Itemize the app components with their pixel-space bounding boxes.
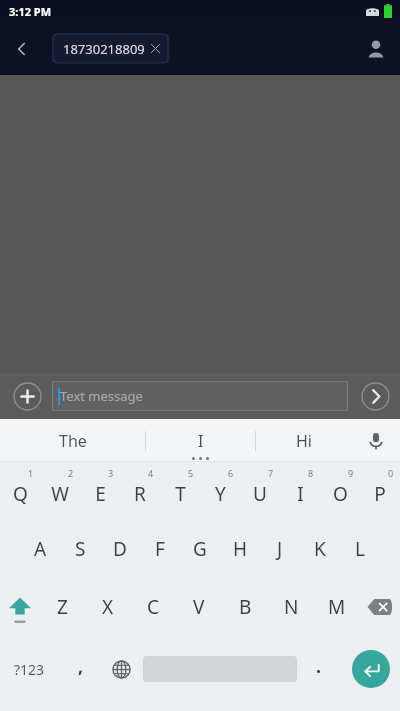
staticText: T bbox=[175, 481, 186, 507]
staticText: I bbox=[198, 430, 204, 452]
staticText: Text message bbox=[60, 387, 143, 405]
button[interactable]: T bbox=[160, 462, 200, 520]
button[interactable]: Y bbox=[200, 462, 240, 520]
button[interactable]: E bbox=[80, 462, 120, 520]
button[interactable]: Attach bbox=[9, 378, 45, 414]
staticText: P bbox=[374, 481, 386, 507]
staticText: O bbox=[333, 481, 348, 507]
button[interactable]: Backspace bbox=[360, 578, 400, 636]
staticText: N bbox=[284, 594, 299, 620]
staticText: J bbox=[277, 536, 283, 562]
staticText: R bbox=[134, 481, 146, 507]
button[interactable]: Shift bbox=[0, 578, 40, 636]
staticText: E bbox=[95, 481, 106, 507]
button[interactable]: The bbox=[0, 419, 145, 462]
button[interactable]: H bbox=[220, 520, 260, 578]
button[interactable]: D bbox=[100, 520, 140, 578]
staticText: L bbox=[355, 536, 365, 562]
button[interactable]: Text message bbox=[52, 381, 348, 411]
button[interactable]: G bbox=[180, 520, 220, 578]
button[interactable]: C bbox=[130, 578, 176, 636]
button[interactable]: Back bbox=[0, 27, 44, 71]
button[interactable]: K bbox=[300, 520, 340, 578]
staticText: The bbox=[59, 430, 87, 452]
staticText: 0 bbox=[388, 467, 394, 479]
staticText: , bbox=[78, 654, 84, 679]
staticText: B bbox=[239, 594, 252, 620]
button[interactable]: N bbox=[268, 578, 314, 636]
staticText: M bbox=[328, 594, 346, 620]
staticText: 3:12 PM bbox=[9, 4, 52, 19]
staticText: 1 bbox=[28, 467, 34, 479]
button[interactable]: Enter bbox=[352, 650, 390, 688]
button[interactable]: W bbox=[40, 462, 80, 520]
button[interactable]: 18730218809 bbox=[53, 34, 170, 63]
button[interactable]: Contact details bbox=[352, 25, 400, 73]
staticText: Hi bbox=[296, 430, 312, 452]
staticText: Z bbox=[57, 594, 68, 620]
button[interactable]: Z bbox=[40, 578, 85, 636]
button[interactable]: Voice input bbox=[352, 419, 400, 462]
staticText: G bbox=[193, 536, 207, 562]
button[interactable]: I bbox=[280, 462, 320, 520]
staticText: 4 bbox=[148, 467, 154, 479]
button[interactable]: B bbox=[222, 578, 268, 636]
staticText: K bbox=[314, 536, 326, 562]
staticText: S bbox=[75, 536, 86, 562]
staticText: U bbox=[253, 481, 267, 507]
staticText: 6 bbox=[228, 467, 234, 479]
button[interactable]: Hi bbox=[256, 419, 352, 462]
button[interactable]: , bbox=[62, 639, 100, 699]
staticText: W bbox=[51, 481, 69, 507]
button[interactable]: U bbox=[240, 462, 280, 520]
staticText: 9 bbox=[348, 467, 354, 479]
staticText: 3 bbox=[108, 467, 114, 479]
button[interactable]: P bbox=[360, 462, 400, 520]
staticText: C bbox=[147, 594, 160, 620]
button[interactable]: J bbox=[260, 520, 300, 578]
staticText: ?123 bbox=[14, 660, 45, 679]
staticText: V bbox=[193, 594, 205, 620]
button[interactable]: Change language bbox=[103, 639, 139, 699]
staticText: 2 bbox=[68, 467, 74, 479]
staticText: I bbox=[297, 481, 304, 507]
staticText: Q bbox=[13, 481, 28, 507]
button[interactable]: Q bbox=[0, 462, 40, 520]
staticText: . bbox=[316, 654, 322, 679]
button[interactable]: Send bbox=[357, 378, 393, 414]
staticText: F bbox=[155, 536, 165, 562]
staticText: D bbox=[113, 536, 127, 562]
button[interactable]: ?123 bbox=[2, 639, 57, 699]
button[interactable]: V bbox=[176, 578, 222, 636]
button[interactable]: L bbox=[340, 520, 380, 578]
button[interactable]: S bbox=[60, 520, 100, 578]
staticText: 5 bbox=[188, 467, 194, 479]
staticText: 8 bbox=[308, 467, 314, 479]
button[interactable]: O bbox=[320, 462, 360, 520]
button[interactable]: F bbox=[140, 520, 180, 578]
button[interactable]: . bbox=[300, 639, 338, 699]
staticText: 18730218809 bbox=[63, 40, 145, 58]
staticText: A bbox=[34, 536, 47, 562]
staticText: X bbox=[102, 594, 114, 620]
button[interactable]: R bbox=[120, 462, 160, 520]
button[interactable]: M bbox=[314, 578, 360, 636]
staticText: Y bbox=[215, 481, 226, 507]
button[interactable]: A bbox=[20, 520, 60, 578]
button[interactable]: X bbox=[85, 578, 130, 636]
staticText: H bbox=[233, 536, 248, 562]
button[interactable]: I bbox=[146, 419, 255, 462]
staticText: 7 bbox=[268, 467, 274, 479]
